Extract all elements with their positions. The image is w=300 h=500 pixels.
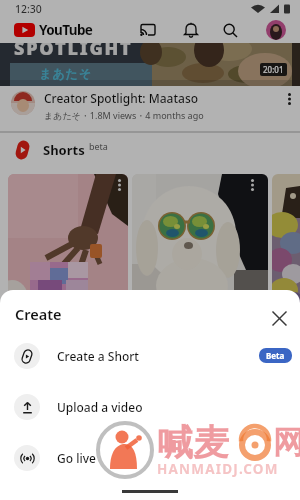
button[interactable]: SPOTLIGHT (0, 43, 300, 86)
staticText: Creator Spotlight: Maataso (44, 90, 199, 106)
staticText: Upload a video (57, 399, 143, 415)
button[interactable] (8, 174, 128, 314)
staticText: SPOTLIGHT (14, 43, 133, 61)
button[interactable] (132, 174, 268, 314)
staticText: beta (89, 140, 108, 152)
button[interactable] (118, 179, 121, 191)
staticText: Beta (266, 350, 285, 361)
staticText: 喊麦 (157, 420, 229, 465)
staticText: HANMAIDJ.COM (157, 460, 279, 478)
staticText: 20:01 (263, 64, 284, 75)
button[interactable]: Create a Short (0, 330, 300, 381)
button[interactable]: Go live (0, 432, 300, 483)
staticText: Create (15, 304, 62, 324)
button[interactable]: YouTube (14, 21, 93, 39)
staticText: 12:30 (15, 2, 42, 16)
button[interactable]: Upload a video (0, 381, 300, 432)
staticText: Shorts (43, 141, 85, 159)
button[interactable] (266, 20, 286, 40)
button[interactable] (288, 93, 291, 105)
button[interactable] (140, 22, 156, 38)
button[interactable] (272, 174, 300, 314)
button[interactable] (183, 22, 199, 38)
staticText: Create a Short (57, 348, 139, 364)
staticText: まあたそ・1.8M views・4 months ago (44, 109, 204, 121)
staticText: Go live (57, 450, 96, 466)
staticText: まあたそ (39, 66, 93, 81)
staticText: 网 (273, 423, 300, 462)
button[interactable] (251, 179, 254, 191)
button[interactable]: Creator Spotlight: Maataso (0, 86, 300, 131)
button[interactable] (223, 23, 238, 38)
button[interactable] (272, 311, 287, 326)
staticText: YouTube (39, 21, 93, 39)
